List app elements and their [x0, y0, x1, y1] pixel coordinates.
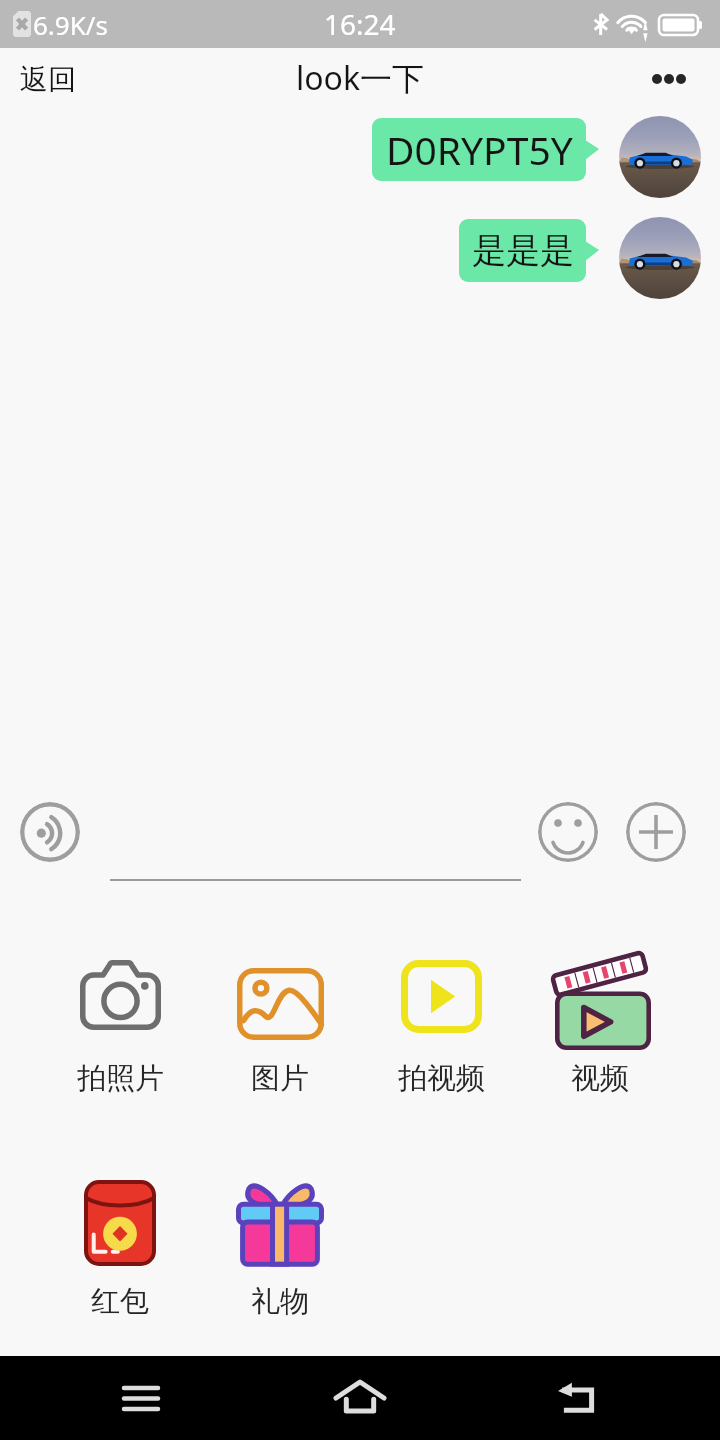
staticText: 是是是	[472, 229, 574, 272]
button[interactable]: Home	[324, 1362, 396, 1434]
staticText: 6.9K/s	[33, 7, 108, 42]
staticText: 视频	[571, 1060, 629, 1097]
button[interactable]: 拍视频	[361, 950, 521, 1100]
button[interactable]: Back	[543, 1362, 615, 1434]
staticText: 拍视频	[398, 1060, 485, 1097]
button[interactable]: Add attachment	[626, 802, 686, 862]
button[interactable]: Message input	[110, 802, 521, 881]
button[interactable]: Profile picture	[619, 116, 701, 198]
button[interactable]: D0RYPT5Y	[372, 118, 586, 181]
staticText: 红包	[91, 1283, 149, 1320]
button[interactable]: 是是是	[459, 219, 586, 282]
button[interactable]: More options	[639, 49, 699, 109]
staticText: 16:24	[324, 5, 396, 43]
button[interactable]: 拍照片	[40, 950, 200, 1100]
button[interactable]: 图片	[200, 958, 360, 1100]
button[interactable]: 红包	[40, 1170, 200, 1323]
staticText: look一下	[296, 56, 425, 100]
staticText: 礼物	[251, 1283, 309, 1320]
button[interactable]: 视频	[520, 947, 680, 1100]
staticText: 拍照片	[77, 1060, 164, 1097]
button[interactable]: 礼物	[200, 1170, 360, 1323]
button[interactable]: Emoji	[538, 802, 598, 862]
staticText: 图片	[251, 1060, 309, 1097]
button[interactable]: Profile picture	[619, 217, 701, 299]
button[interactable]: Voice message	[20, 802, 80, 862]
staticText: D0RYPT5Y	[386, 123, 573, 176]
button[interactable]: Recent apps menu	[105, 1362, 177, 1434]
button[interactable]: 返回	[0, 52, 96, 107]
staticText: 返回	[20, 62, 76, 97]
